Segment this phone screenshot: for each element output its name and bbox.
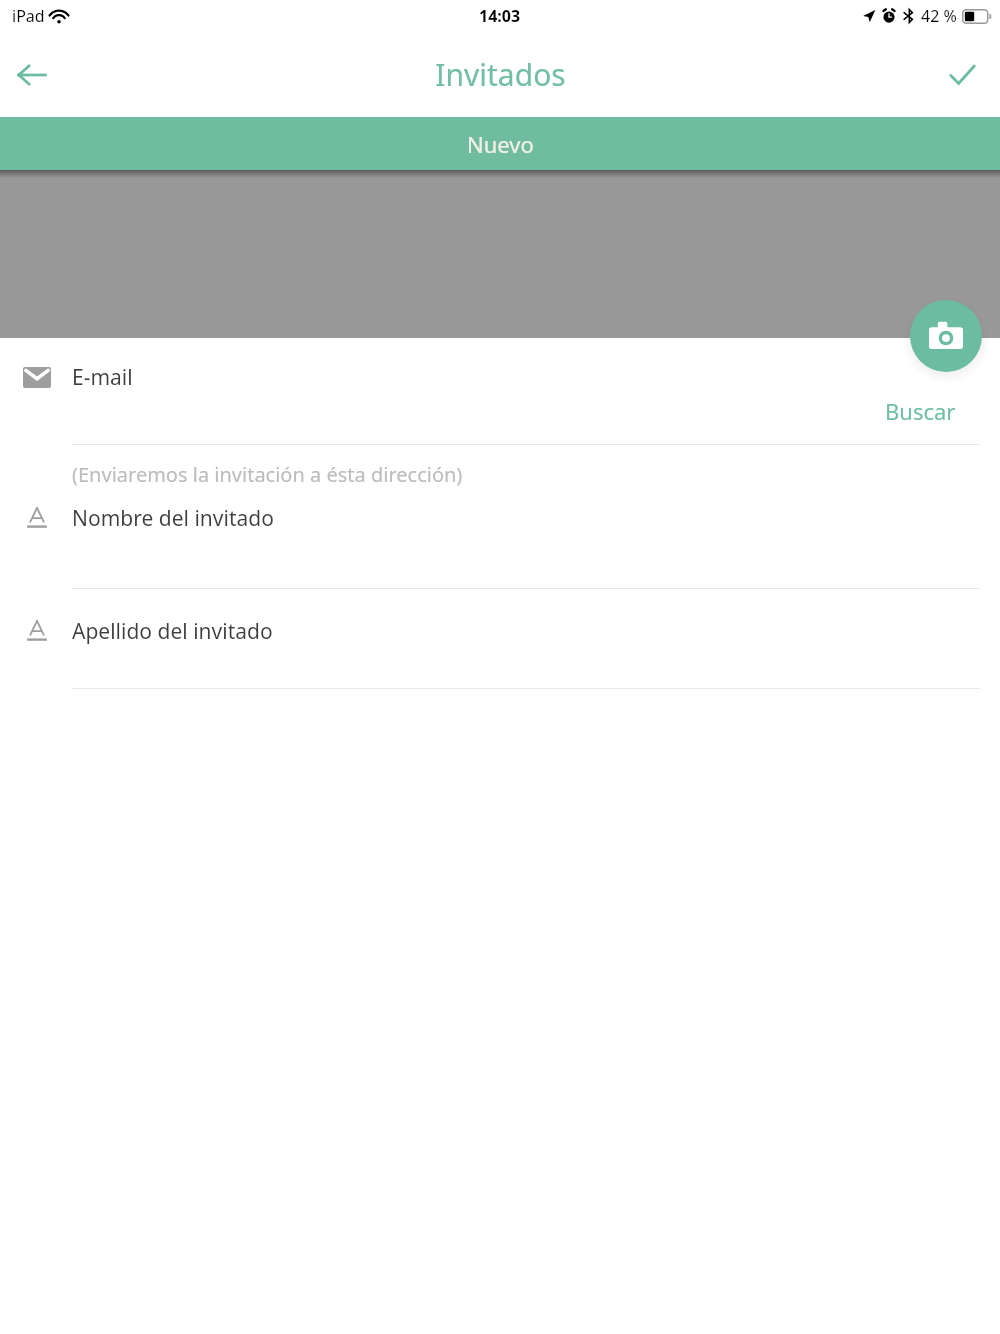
- staticText: 14:03: [479, 5, 521, 27]
- staticText: (Enviaremos la invitación a ésta direcci…: [72, 461, 463, 488]
- staticText: Buscar: [885, 396, 956, 426]
- staticText: Nuevo: [467, 129, 534, 159]
- button[interactable]: Nuevo: [0, 117, 1000, 170]
- button[interactable]: Buscar: [885, 396, 956, 426]
- staticText: Invitados: [435, 54, 566, 95]
- staticText: iPad: [12, 5, 45, 27]
- button[interactable]: Tomar foto: [910, 300, 982, 372]
- staticText: E-mail: [72, 363, 133, 392]
- button[interactable]: [0, 170, 1000, 338]
- staticText: Apellido del invitado: [72, 617, 273, 646]
- button[interactable]: Apellido del invitado: [0, 599, 1000, 693]
- button[interactable]: Atrás: [0, 43, 64, 107]
- button[interactable]: E-mail: [0, 356, 1000, 459]
- button[interactable]: Confirmar: [930, 43, 994, 107]
- button[interactable]: Nombre del invitado: [0, 498, 1000, 599]
- staticText: 42 %: [921, 5, 957, 27]
- staticText: Nombre del invitado: [72, 504, 274, 533]
